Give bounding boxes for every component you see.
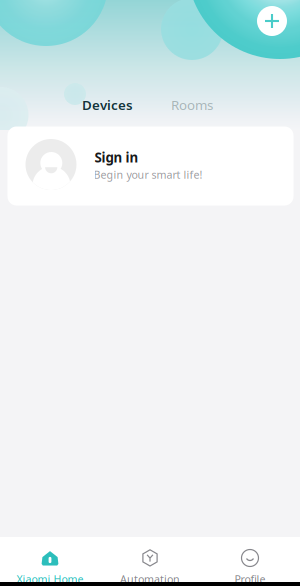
button[interactable]: Rooms	[171, 96, 213, 114]
button[interactable]: Xiaomi Home	[0, 537, 100, 582]
button[interactable]: Sign in	[7, 126, 293, 205]
staticText: Profile	[234, 572, 265, 586]
button[interactable]: Add device	[257, 6, 287, 36]
staticText: Rooms	[171, 96, 213, 114]
staticText: Devices	[82, 96, 133, 114]
button[interactable]: Devices	[82, 96, 133, 114]
button[interactable]: Automation	[100, 537, 200, 582]
staticText: Begin your smart life!	[93, 167, 202, 182]
staticText: Xiaomi Home	[16, 572, 83, 586]
staticText: Automation	[120, 572, 180, 586]
button[interactable]: Profile	[200, 537, 300, 582]
staticText: Sign in	[94, 148, 138, 166]
